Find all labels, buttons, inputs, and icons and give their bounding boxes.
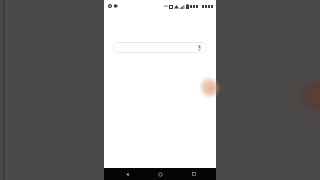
- button[interactable]: Home: [149, 168, 171, 180]
- button[interactable]: Back: [116, 168, 138, 180]
- button[interactable]: Recent apps: [183, 168, 205, 180]
- button[interactable]: Voice search: [196, 44, 203, 51]
- button[interactable]: Voice search: [113, 42, 207, 53]
